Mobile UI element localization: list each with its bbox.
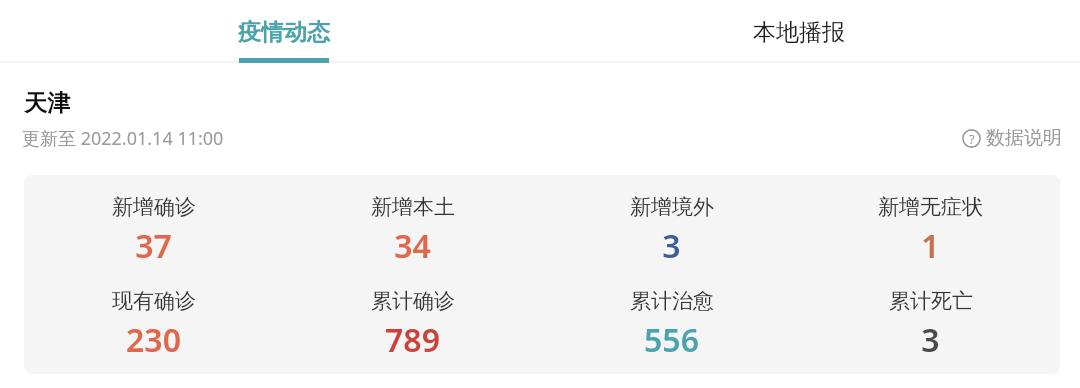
staticText: 1 xyxy=(921,224,940,268)
button[interactable]: 累计死亡 xyxy=(801,277,1060,371)
other: 数据说明 xyxy=(962,129,981,148)
staticText: 累计死亡 xyxy=(889,288,973,314)
staticText: 789 xyxy=(385,318,440,362)
staticText: 本地播报 xyxy=(753,18,845,47)
button[interactable]: 现有确诊 xyxy=(24,277,283,371)
button[interactable]: 累计确诊 xyxy=(283,277,542,371)
staticText: 3 xyxy=(921,318,940,362)
staticText: 37 xyxy=(135,224,172,268)
staticText: 更新至 2022.01.14 11:00 xyxy=(22,126,224,151)
staticText: 疫情动态 xyxy=(238,18,330,47)
button[interactable]: 累计治愈 xyxy=(542,277,801,371)
staticText: 新增本土 xyxy=(371,194,455,220)
button[interactable]: 疫情动态 xyxy=(0,0,540,63)
button[interactable]: 数据说明 xyxy=(956,126,1068,150)
staticText: 34 xyxy=(394,224,431,268)
button[interactable]: 新增确诊 xyxy=(24,183,283,277)
button[interactable]: 新增无症状 xyxy=(801,183,1060,277)
staticText: 累计确诊 xyxy=(371,288,455,314)
staticText: ? xyxy=(969,130,975,148)
staticText: 新增境外 xyxy=(630,194,714,220)
staticText: 3 xyxy=(662,224,681,268)
staticText: 累计治愈 xyxy=(630,288,714,314)
staticText: 新增无症状 xyxy=(878,194,983,220)
staticText: 现有确诊 xyxy=(112,288,196,314)
staticText: 新增确诊 xyxy=(112,194,196,220)
staticText: 230 xyxy=(126,318,181,362)
staticText: 天津 xyxy=(24,89,70,118)
staticText: 556 xyxy=(644,318,699,362)
button[interactable]: 新增境外 xyxy=(542,183,801,277)
button[interactable]: 新增本土 xyxy=(283,183,542,277)
staticText: 数据说明 xyxy=(986,126,1062,150)
button[interactable]: 本地播报 xyxy=(540,0,1080,63)
